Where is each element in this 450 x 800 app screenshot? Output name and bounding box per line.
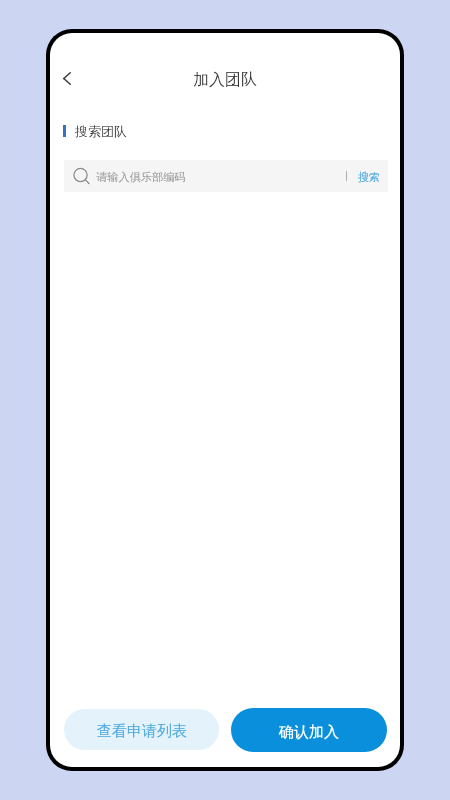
staticText: 搜索 [358, 170, 380, 184]
staticText: 加入团队 [193, 70, 257, 90]
staticText: 搜索团队 [75, 123, 127, 139]
button[interactable]: 搜索 [347, 160, 388, 192]
staticText: 请输入俱乐部编码 [96, 170, 186, 184]
button[interactable]: 查看申请列表 [64, 709, 219, 750]
staticText: 确认加入 [279, 723, 339, 742]
button[interactable]: Back [50, 62, 84, 96]
button[interactable]: 确认加入 [231, 708, 387, 752]
staticText: 查看申请列表 [97, 722, 187, 741]
